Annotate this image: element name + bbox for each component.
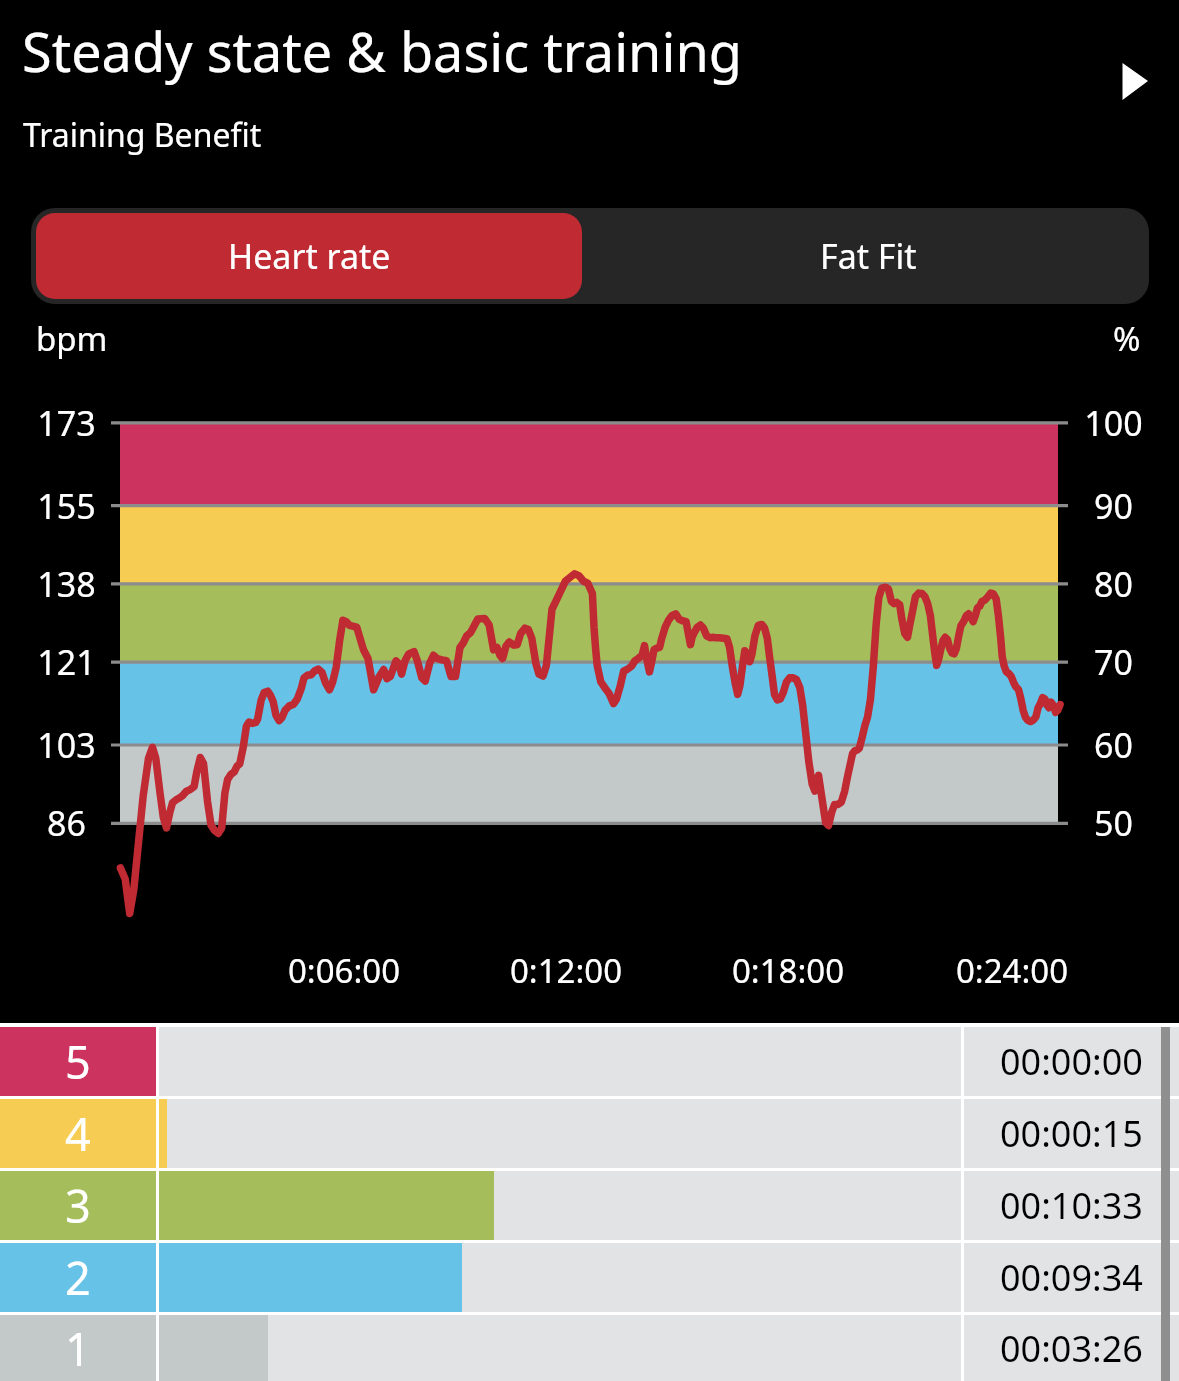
staticText: 00:00:15 <box>1000 1109 1143 1158</box>
staticText: 173 <box>0 400 133 446</box>
staticText: 0:06:00 <box>234 948 454 993</box>
staticText: 100 <box>1047 400 1179 446</box>
staticText: Fat Fit <box>820 233 917 279</box>
staticText: 00:00:00 <box>1000 1037 1143 1086</box>
button[interactable]: 3 <box>0 1171 1179 1240</box>
staticText: 0:24:00 <box>902 948 1122 993</box>
staticText: 121 <box>0 639 133 685</box>
staticText: 3 <box>65 1175 91 1236</box>
staticText: % <box>1113 316 1141 361</box>
staticText: 50 <box>1047 800 1179 846</box>
button[interactable]: 1 <box>0 1315 1179 1381</box>
staticText: Training Benefit <box>23 113 262 157</box>
staticText: 155 <box>0 483 133 529</box>
button[interactable]: 2 <box>0 1243 1179 1312</box>
staticText: bpm <box>36 316 108 361</box>
button[interactable]: 4 <box>0 1099 1179 1168</box>
staticText: 2 <box>65 1247 91 1308</box>
button[interactable]: Fat Fit <box>587 208 1149 304</box>
button[interactable]: 5 <box>0 1027 1179 1096</box>
staticText: 4 <box>65 1103 91 1164</box>
staticText: 00:03:26 <box>1000 1324 1143 1373</box>
staticText: 60 <box>1047 722 1179 768</box>
staticText: Steady state & basic training <box>22 14 742 88</box>
staticText: Heart rate <box>228 233 391 279</box>
staticText: 0:18:00 <box>678 948 898 993</box>
staticText: 00:09:34 <box>1000 1253 1143 1302</box>
staticText: 86 <box>0 800 133 846</box>
staticText: 0:12:00 <box>456 948 676 993</box>
staticText: 00:10:33 <box>1000 1181 1143 1230</box>
staticText: 70 <box>1047 639 1179 685</box>
button[interactable]: Heart rate <box>36 213 582 299</box>
staticText: 1 <box>65 1318 91 1379</box>
staticText: 90 <box>1047 483 1179 529</box>
staticText: 103 <box>0 722 133 768</box>
button[interactable]: Play <box>1095 44 1175 124</box>
staticText: 138 <box>0 561 133 607</box>
staticText: 5 <box>65 1031 91 1092</box>
staticText: 80 <box>1047 561 1179 607</box>
